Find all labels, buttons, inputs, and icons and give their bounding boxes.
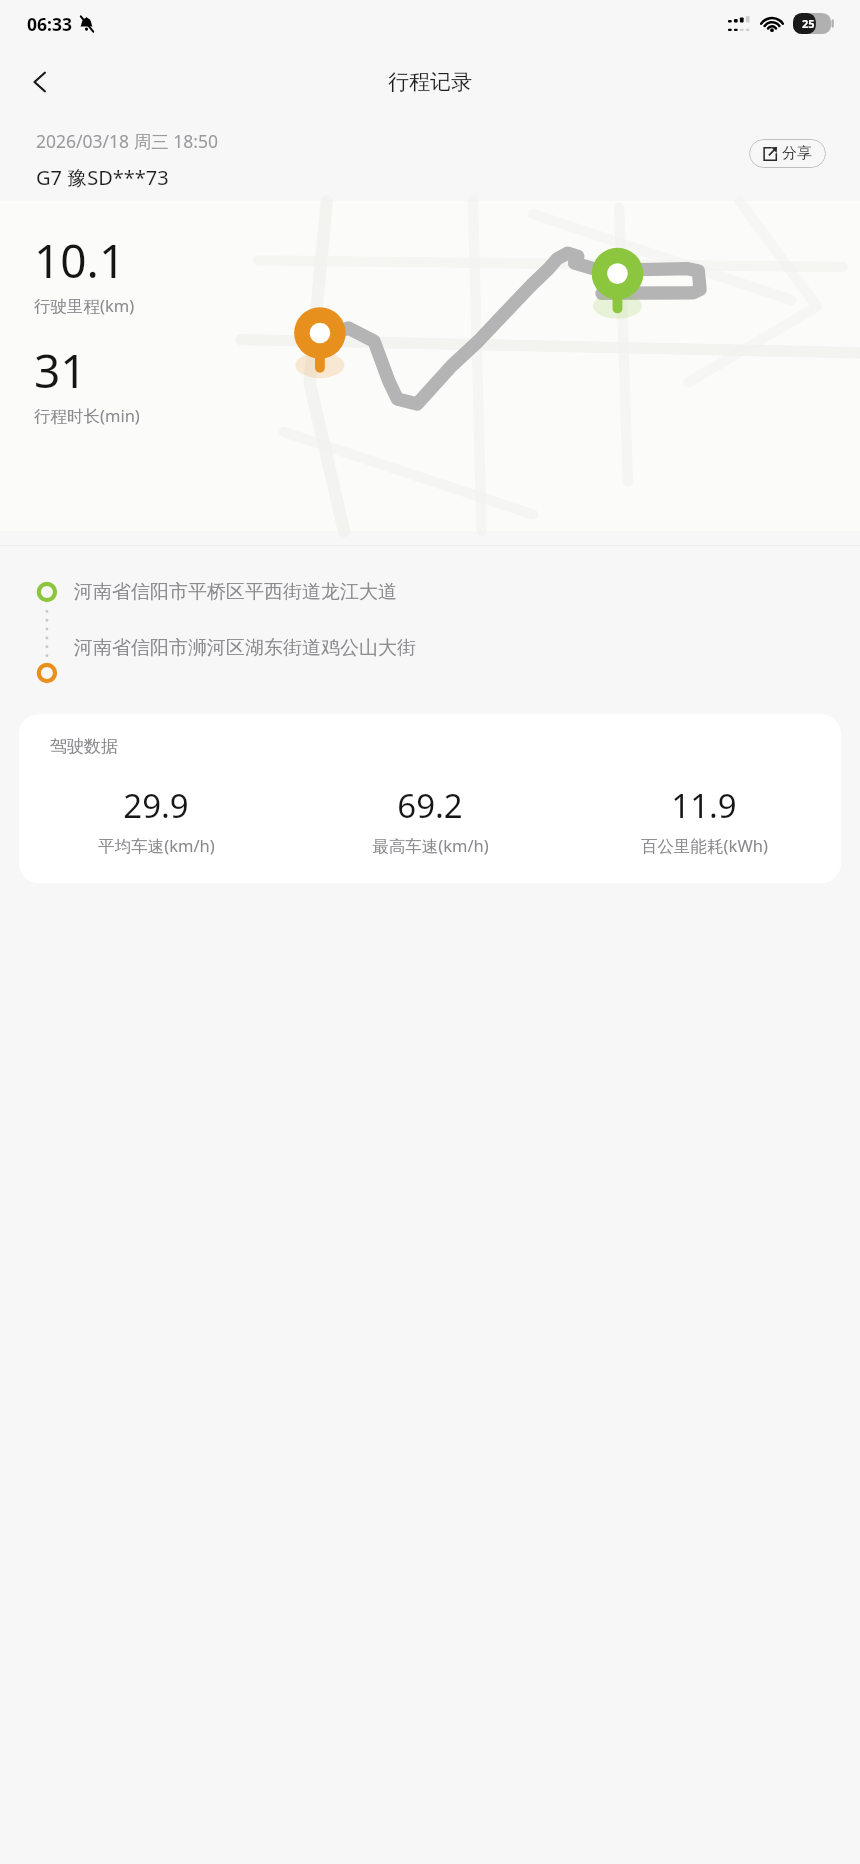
staticText: 平均车速(km/h) bbox=[98, 834, 215, 857]
button[interactable]: 河南省信阳市浉河区湖东街道鸡公山大街 bbox=[74, 636, 830, 660]
button[interactable]: 返回 bbox=[12, 54, 68, 110]
staticText: 分享 bbox=[782, 144, 812, 163]
staticText: 行程时长(min) bbox=[34, 404, 140, 427]
staticText: 11.9 bbox=[671, 783, 737, 828]
staticText: 2026/03/18 周三 18:50 bbox=[36, 129, 218, 153]
staticText: 06:33 bbox=[27, 12, 72, 36]
staticText: 29.9 bbox=[123, 783, 189, 828]
staticText: 69.2 bbox=[397, 783, 463, 828]
button[interactable]: 河南省信阳市平桥区平西街道龙江大道 bbox=[74, 580, 830, 604]
staticText: 河南省信阳市浉河区湖东街道鸡公山大街 bbox=[74, 636, 416, 660]
staticText: 31 bbox=[34, 339, 87, 402]
staticText: 10.1 bbox=[34, 229, 126, 292]
staticText: 驾驶数据 bbox=[50, 736, 118, 757]
staticText: 行驶里程(km) bbox=[34, 294, 135, 317]
staticText: 河南省信阳市平桥区平西街道龙江大道 bbox=[74, 580, 397, 604]
button[interactable]: 分享 bbox=[749, 139, 826, 168]
staticText: 最高车速(km/h) bbox=[372, 834, 489, 857]
staticText: 25 bbox=[802, 16, 815, 31]
button[interactable]: 驾驶数据 bbox=[19, 714, 841, 883]
staticText: 百公里能耗(kWh) bbox=[641, 834, 768, 857]
staticText: 行程记录 bbox=[388, 69, 472, 95]
staticText: G7 豫SD***73 bbox=[36, 164, 169, 191]
